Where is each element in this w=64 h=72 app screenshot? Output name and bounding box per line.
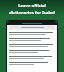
button[interactable]: Search	[9, 26, 55, 29]
button[interactable]	[8, 43, 56, 48]
staticText: Leave official	[0, 3, 64, 9]
button[interactable]	[8, 61, 56, 66]
button[interactable]	[8, 37, 56, 42]
button[interactable]: App bar	[7, 21, 57, 25]
button[interactable]	[8, 55, 56, 60]
button[interactable]	[8, 49, 56, 54]
staticText: dictionaries for Isabel	[0, 10, 64, 16]
button[interactable]	[8, 31, 56, 36]
